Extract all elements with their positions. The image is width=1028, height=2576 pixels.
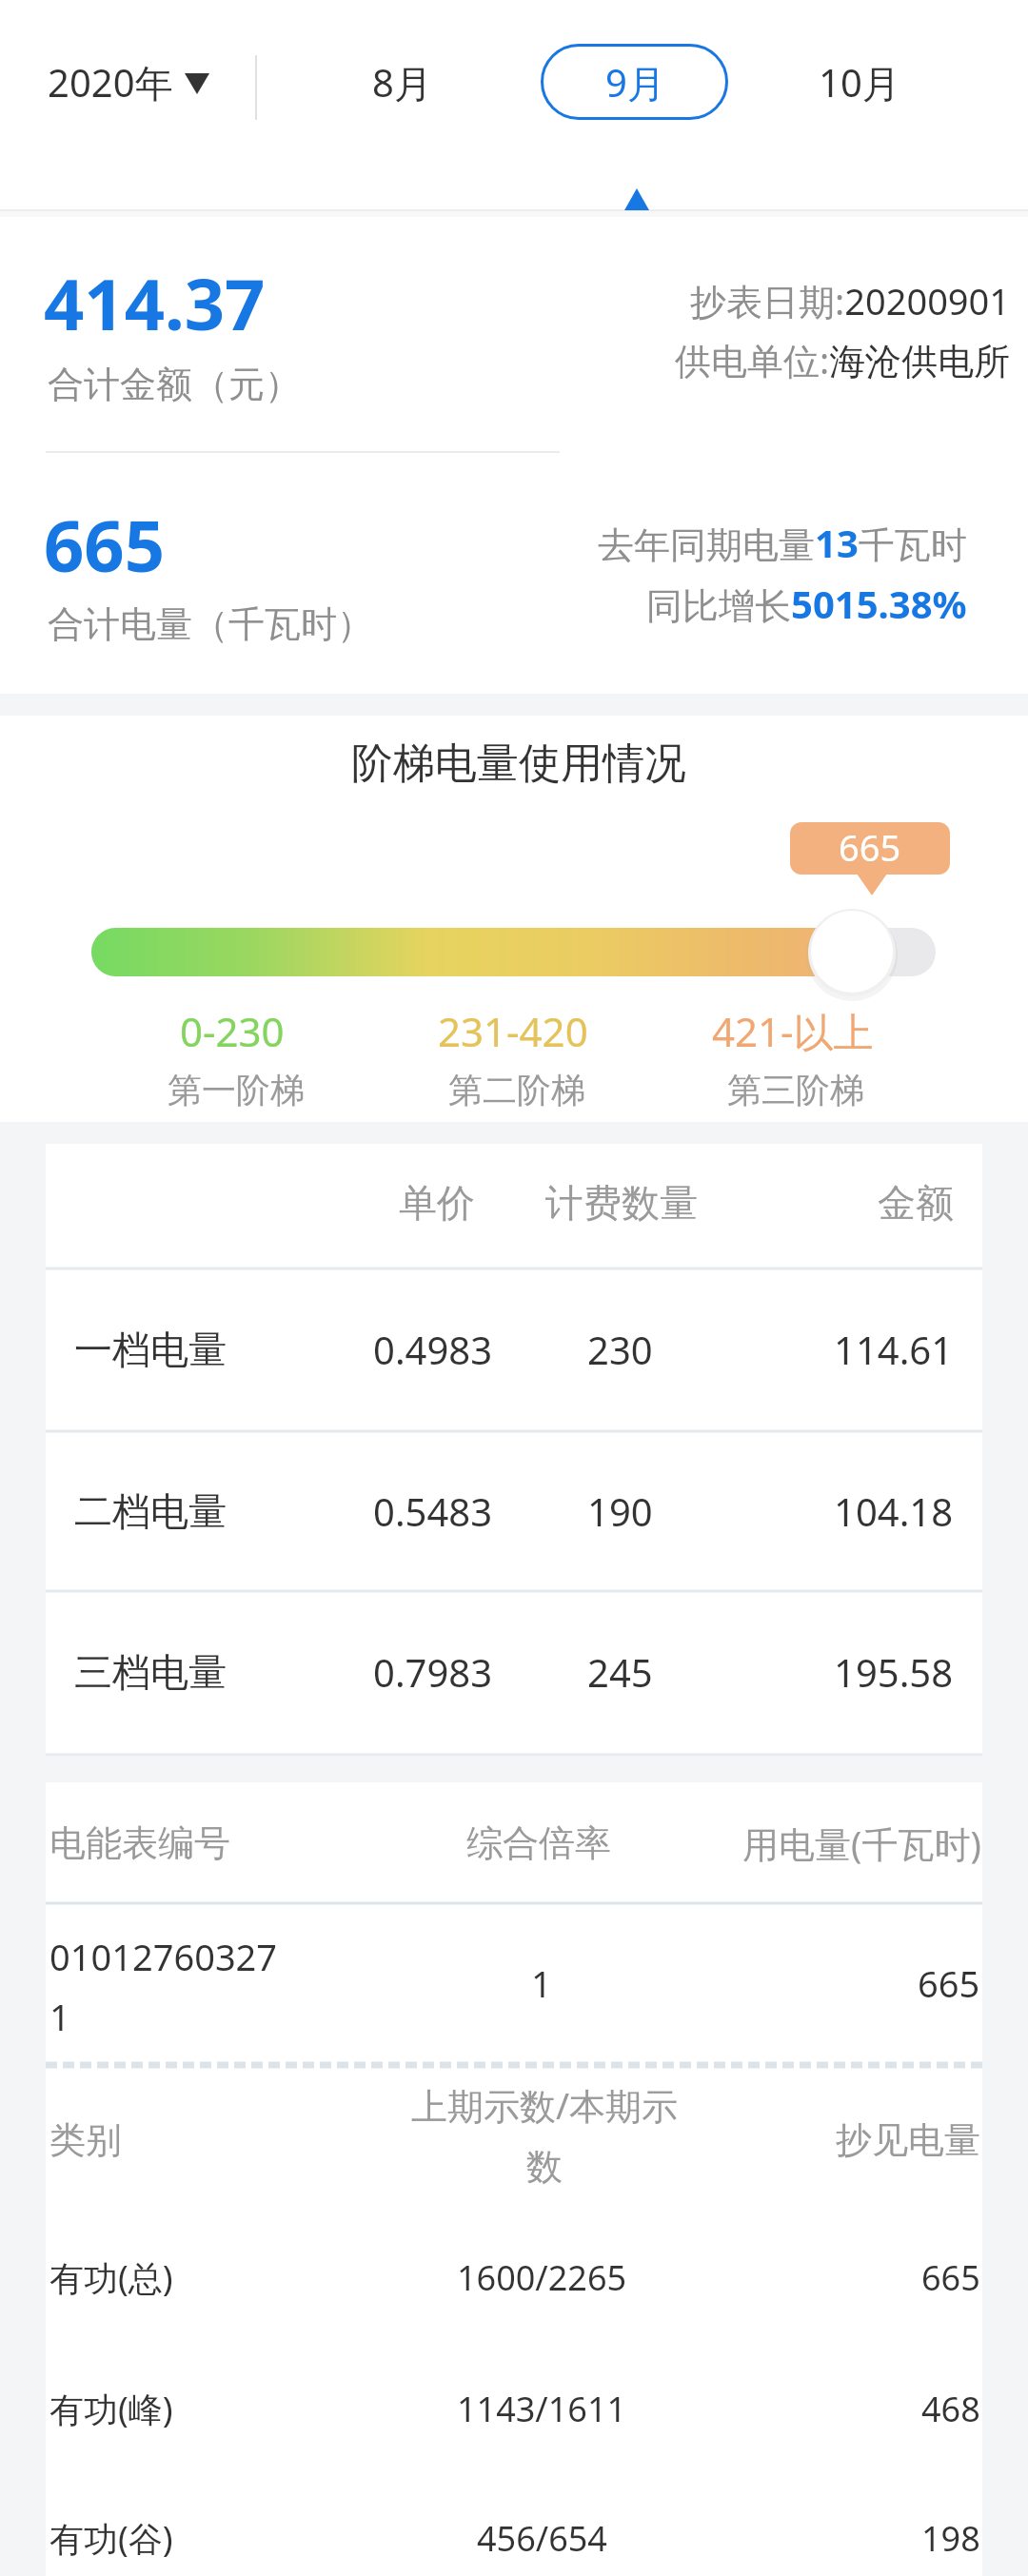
staticText: 665 bbox=[44, 497, 165, 592]
staticText: 同比增长5015.38% bbox=[646, 578, 967, 629]
staticText: 10月 bbox=[819, 56, 900, 108]
staticText: 有功(峰) bbox=[49, 2386, 173, 2432]
staticText: 合计电量（千瓦时） bbox=[48, 601, 373, 647]
staticText: 9月 bbox=[605, 56, 665, 108]
staticText: 0.4983 bbox=[373, 1324, 493, 1375]
staticText: 供电单位:海沧供电所 bbox=[675, 335, 1011, 384]
staticText: 用电量(千瓦时) bbox=[742, 1819, 981, 1868]
staticText: 抄见电量 bbox=[836, 2117, 980, 2163]
staticText: 0.7983 bbox=[373, 1646, 493, 1698]
staticText: 第一阶梯 bbox=[168, 1069, 305, 1111]
staticText: 抄表日期:20200901 bbox=[690, 276, 1011, 325]
staticText: 有功(谷) bbox=[49, 2515, 173, 2562]
staticText: 二档电量 bbox=[74, 1487, 227, 1535]
staticText: 上期示数/本期示数 bbox=[402, 2080, 687, 2190]
staticText: 第二阶梯 bbox=[448, 1069, 585, 1111]
staticText: 计费数量 bbox=[545, 1179, 698, 1227]
staticText: 阶梯电量使用情况 bbox=[351, 737, 686, 790]
staticText: 104.18 bbox=[834, 1485, 954, 1537]
staticText: 665 bbox=[839, 822, 901, 872]
staticText: 电能表编号 bbox=[49, 1820, 230, 1866]
staticText: 有功(总) bbox=[49, 2254, 173, 2301]
staticText: 2020年 bbox=[48, 56, 173, 108]
staticText: 665 bbox=[921, 2254, 980, 2301]
staticText: 三档电量 bbox=[74, 1648, 227, 1696]
staticText: 合计金额（元） bbox=[48, 362, 301, 407]
staticText: 0.5483 bbox=[373, 1485, 493, 1537]
staticText: 114.61 bbox=[834, 1324, 954, 1375]
staticText: 190 bbox=[587, 1485, 653, 1537]
staticText: 金额 bbox=[878, 1179, 954, 1227]
button[interactable] bbox=[781, 34, 938, 129]
staticText: 去年同期电量13千瓦时 bbox=[598, 517, 967, 568]
staticText: 1 bbox=[531, 1958, 552, 2008]
staticText: 198 bbox=[921, 2515, 980, 2562]
staticText: 456/654 bbox=[477, 2515, 607, 2562]
staticText: 1143/1611 bbox=[457, 2386, 627, 2432]
staticText: 010127603271 bbox=[49, 1932, 287, 2041]
staticText: 综合倍率 bbox=[466, 1820, 611, 1866]
staticText: 230 bbox=[587, 1324, 653, 1375]
staticText: 414.37 bbox=[44, 255, 266, 350]
staticText: 0-230 bbox=[180, 1004, 285, 1058]
staticText: 单价 bbox=[399, 1179, 475, 1227]
staticText: 第三阶梯 bbox=[727, 1069, 864, 1111]
staticText: 8月 bbox=[372, 56, 432, 108]
staticText: 665 bbox=[918, 1958, 980, 2008]
staticText: 231-420 bbox=[438, 1004, 588, 1058]
staticText: 195.58 bbox=[834, 1646, 954, 1698]
button[interactable] bbox=[541, 44, 728, 120]
staticText: 一档电量 bbox=[74, 1326, 227, 1373]
button[interactable] bbox=[324, 34, 481, 129]
button[interactable] bbox=[29, 34, 219, 129]
staticText: 1600/2265 bbox=[457, 2254, 627, 2301]
staticText: 类别 bbox=[49, 2117, 122, 2163]
staticText: 421-以上 bbox=[712, 1004, 874, 1058]
staticText: 468 bbox=[921, 2386, 980, 2432]
staticText: 245 bbox=[587, 1646, 653, 1698]
